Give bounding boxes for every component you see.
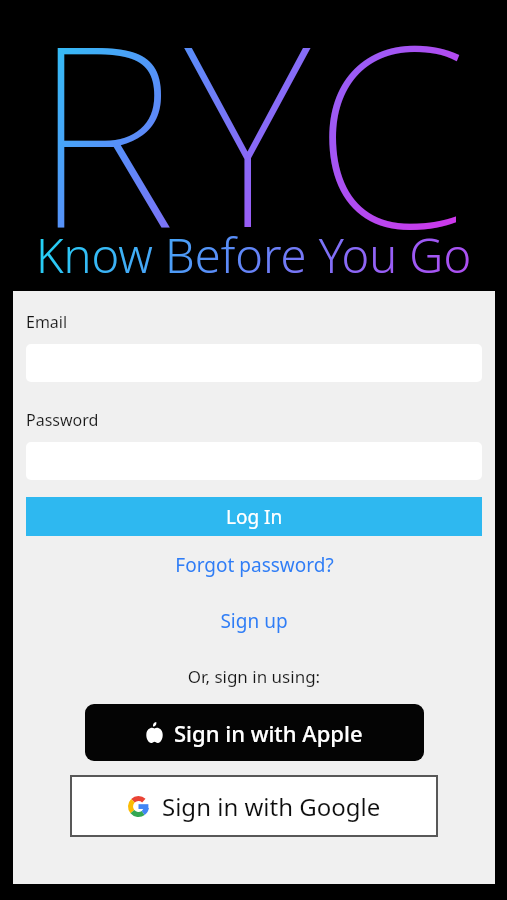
- button[interactable]: Sign up: [26, 608, 482, 634]
- button[interactable]: Log In: [26, 497, 482, 536]
- staticText: Log In: [226, 504, 283, 530]
- button[interactable]: Forgot password?: [26, 552, 482, 578]
- staticText: Sign in with Google: [162, 790, 381, 823]
- staticText: RYC: [0, 0, 507, 251]
- staticText: Or, sign in using:: [26, 665, 482, 688]
- staticText: Know Before You Go: [0, 223, 507, 287]
- staticText: Sign in with Apple: [174, 718, 363, 748]
- staticText: Sign up: [220, 608, 288, 634]
- staticText: Password: [26, 409, 99, 431]
- staticText: Email: [26, 311, 68, 333]
- staticText: Forgot password?: [175, 552, 334, 578]
- button[interactable]: Sign in with Google: [70, 775, 438, 837]
- button[interactable]: Sign in with Apple: [85, 704, 424, 761]
